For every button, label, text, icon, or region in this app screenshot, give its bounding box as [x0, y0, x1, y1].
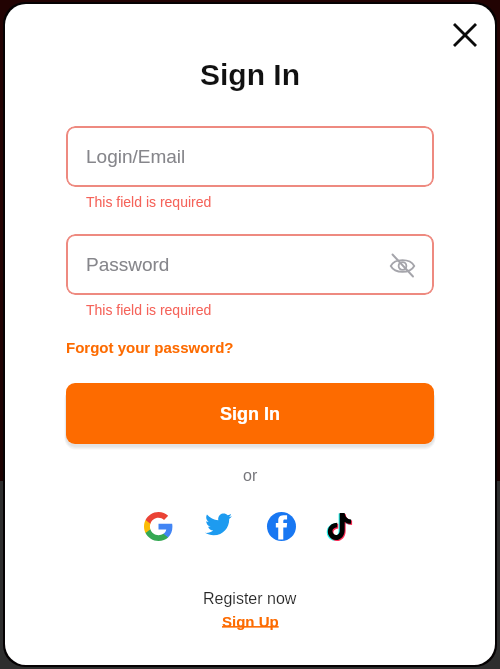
staticText: Login/Email: [86, 146, 186, 167]
button[interactable]: Close: [443, 13, 486, 56]
button[interactable]: Password: [66, 234, 434, 295]
button[interactable]: Login/Email: [66, 126, 434, 187]
button[interactable]: Forgot your password?: [60, 335, 240, 360]
button[interactable]: Sign in with Facebook: [262, 507, 300, 545]
staticText: Sign Up: [222, 613, 279, 630]
button[interactable]: Sign In: [66, 383, 434, 444]
staticText: Sign In: [200, 58, 300, 92]
button[interactable]: Sign in with Google: [139, 507, 177, 545]
staticText: This field is required: [86, 194, 212, 210]
button[interactable]: Sign Up: [212, 610, 289, 633]
staticText: Forgot your password?: [66, 339, 234, 356]
button[interactable]: Sign in with TikTok: [321, 507, 359, 545]
staticText: Password: [86, 254, 170, 275]
staticText: This field is required: [86, 302, 212, 318]
staticText: Sign In: [220, 404, 280, 424]
staticText: or: [243, 467, 258, 485]
button[interactable]: Sign in with Twitter: [199, 505, 237, 543]
button[interactable]: Show password: [386, 249, 418, 281]
staticText: Register now: [203, 590, 297, 608]
